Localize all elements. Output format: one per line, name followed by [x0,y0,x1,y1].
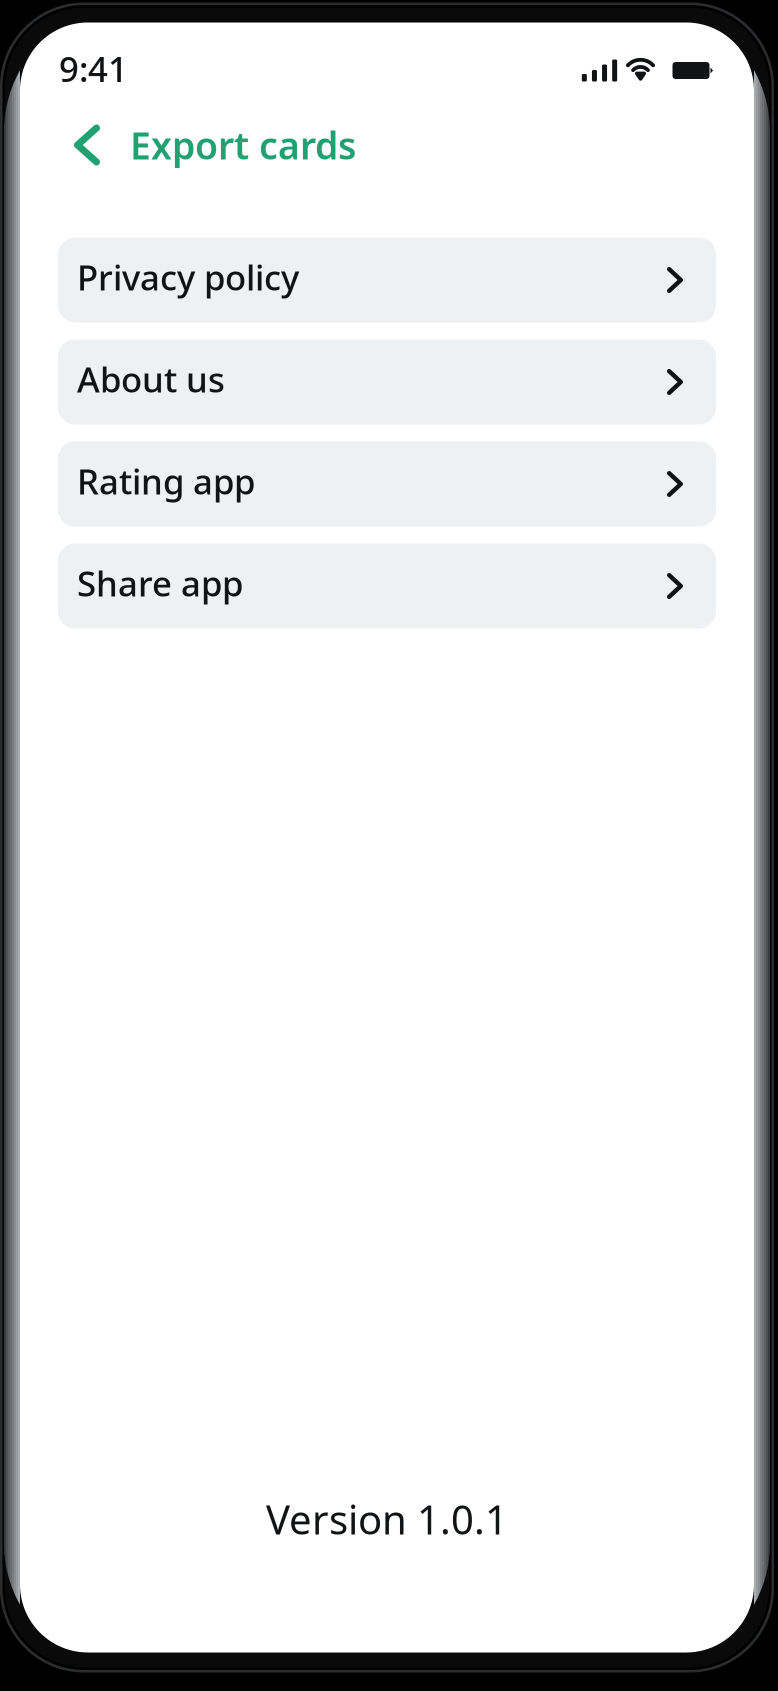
button[interactable]: About us [58,339,716,424]
staticText: 9:41 [59,45,128,91]
staticText: Rating app [77,458,255,504]
staticText: Privacy policy [77,254,299,300]
staticText: Version 1.0.1 [266,1492,508,1545]
button[interactable]: Share app [58,543,716,628]
staticText: Share app [77,560,243,606]
button[interactable]: Privacy policy [58,237,716,322]
staticText: About us [77,356,225,402]
staticText: Export cards [130,120,356,170]
button[interactable]: Rating app [58,441,716,526]
button[interactable]: Back [65,117,109,172]
